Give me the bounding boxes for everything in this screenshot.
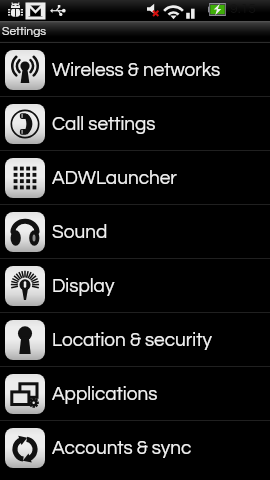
button[interactable]: Location & security [0,313,270,366]
button[interactable]: Display [0,259,270,312]
button[interactable]: Wireless & networks [0,43,270,96]
other: Wi-Fi signal [166,6,181,19]
other: Battery charging [208,3,227,16]
staticText: Settings [2,25,47,37]
other: Silent mode [147,3,159,16]
staticText: Wireless & networks [52,60,221,80]
other: Mobile signal [186,7,195,19]
staticText: Sound [52,222,108,242]
other: USB connected [50,5,65,16]
staticText: Applications [52,384,158,404]
button[interactable]: Accounts & sync [0,421,270,474]
staticText: 9:15 [230,2,256,16]
button[interactable]: Applications [0,367,270,420]
button[interactable]: Call settings [0,97,270,150]
staticText: Display [52,276,115,296]
staticText: Location & security [52,330,212,350]
other: USB debugging [8,2,23,18]
staticText: Call settings [52,114,156,134]
staticText: Accounts & sync [52,438,192,458]
other: New mail [27,4,44,18]
staticText: ADWLauncher [52,168,177,188]
button[interactable]: ADWLauncher [0,151,270,204]
button[interactable]: Sound [0,205,270,258]
